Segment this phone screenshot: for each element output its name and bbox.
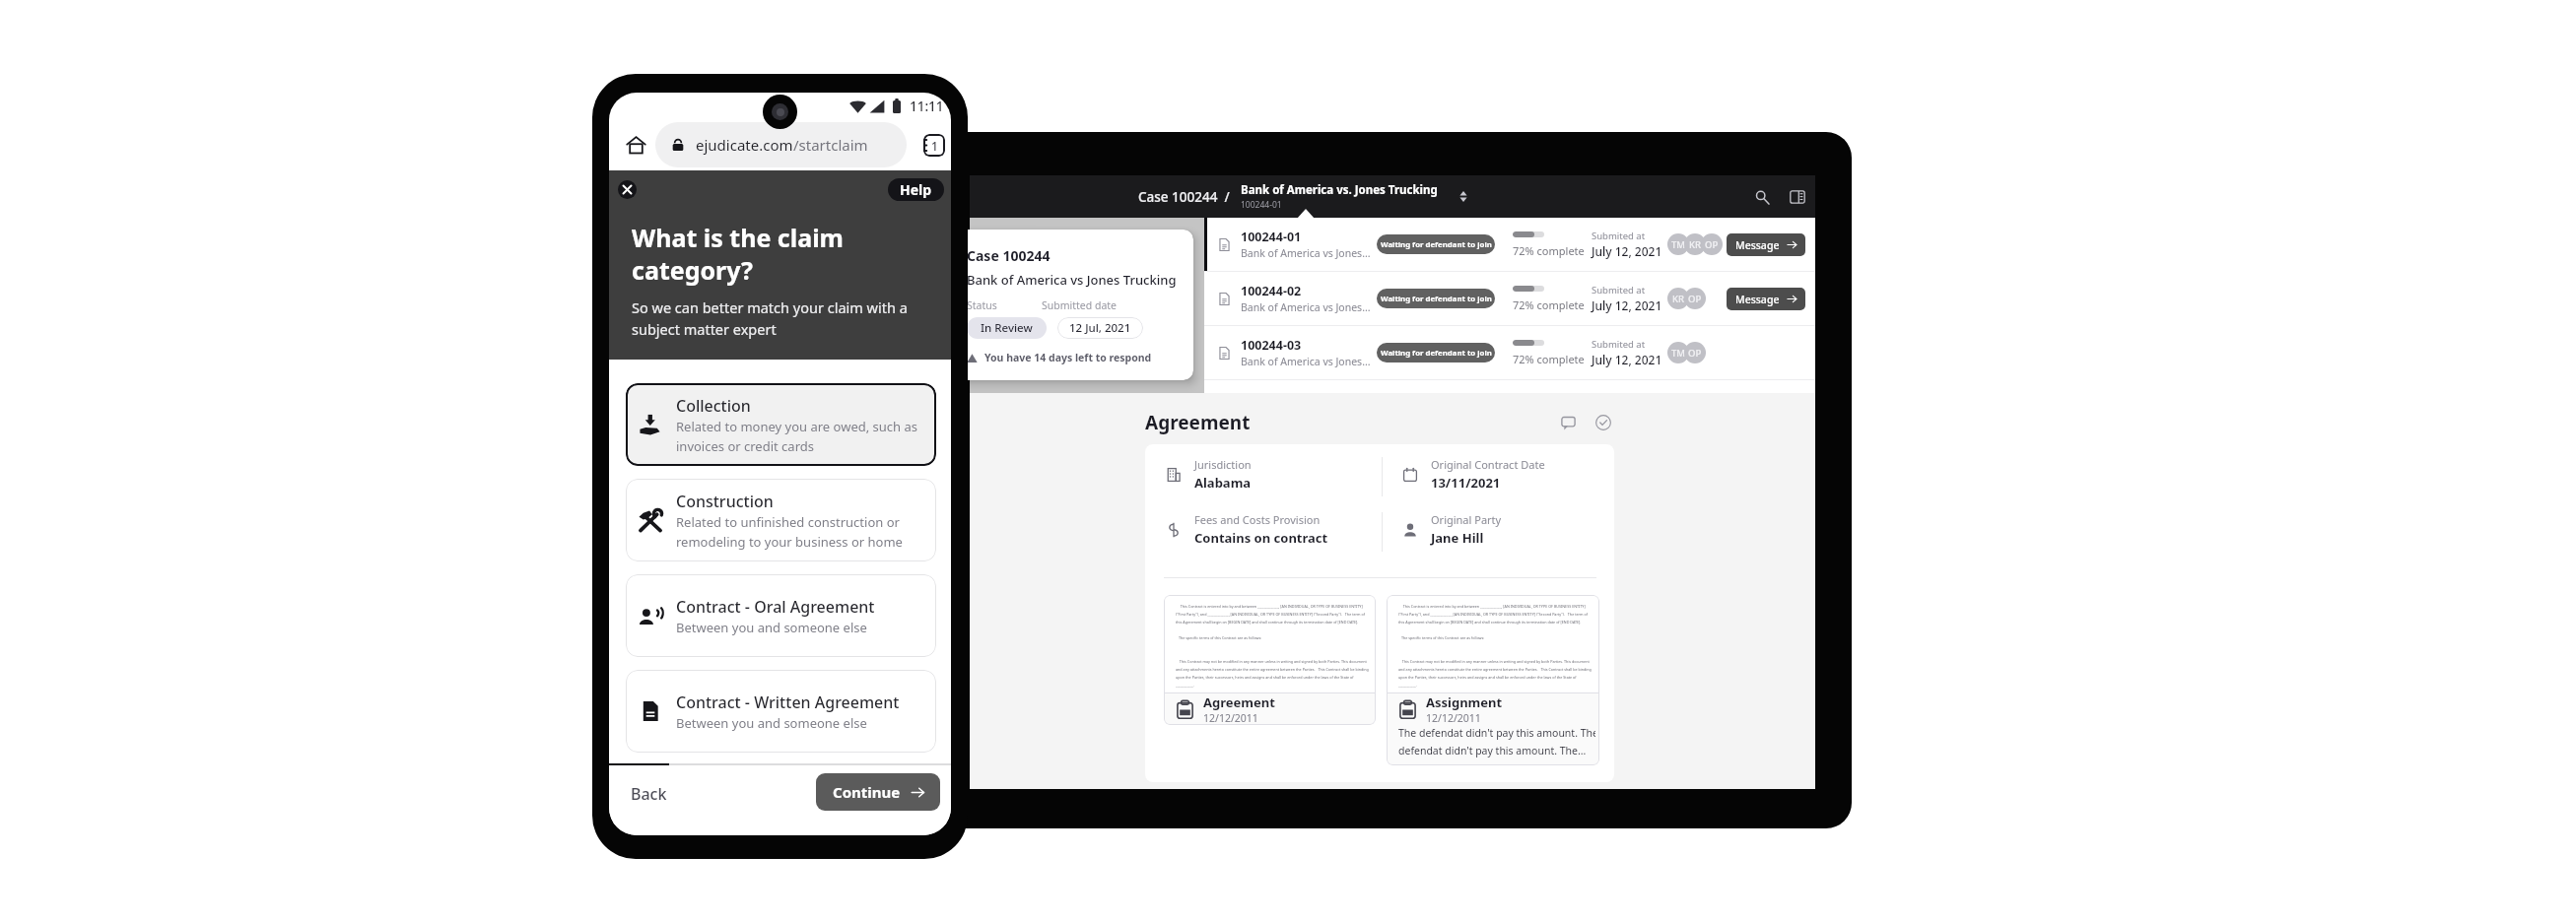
- staticText: Construction: [676, 491, 774, 512]
- staticText: July 12, 2021: [1592, 352, 1662, 367]
- staticText: In Review: [981, 320, 1033, 336]
- staticText: 12/12/2011: [1203, 711, 1258, 725]
- button[interactable]: Help: [888, 178, 944, 201]
- staticText: Jurisdiction: [1194, 457, 1252, 472]
- staticText: Original Contract Date: [1431, 457, 1545, 472]
- button[interactable]: Comments: [1557, 412, 1579, 433]
- staticText: Status: [967, 298, 997, 312]
- staticText: ejudicate.com: [696, 135, 793, 155]
- staticText: Contract - Oral Agreement: [676, 596, 875, 618]
- staticText: KR: [1689, 238, 1702, 251]
- button[interactable]: Home: [618, 127, 653, 163]
- staticText: 100244-03: [1241, 337, 1302, 354]
- staticText: Message: [1735, 293, 1780, 306]
- staticText: You have 14 days left to respond: [984, 351, 1152, 364]
- staticText: Submited at: [1592, 284, 1646, 296]
- staticText: Original Party: [1431, 512, 1502, 527]
- button[interactable]: 12 Jul, 2021: [1057, 317, 1143, 339]
- staticText: July 12, 2021: [1592, 297, 1662, 313]
- staticText: Submitted date: [1042, 298, 1117, 312]
- staticText: Assignment: [1426, 693, 1503, 711]
- staticText: Bank of America vs Jones...: [1241, 300, 1371, 314]
- staticText: Waiting for defendant to join: [1381, 239, 1492, 250]
- button[interactable]: 100244-01: [1204, 218, 1815, 271]
- staticText: Contract - Written Agreement: [676, 691, 900, 713]
- staticText: 100244-01: [1241, 199, 1282, 211]
- staticText: Bank of America vs Jones...: [1241, 355, 1371, 368]
- staticText: Agreement: [1203, 693, 1275, 711]
- staticText: TM: [1671, 347, 1686, 360]
- button[interactable]: This Contract is entered into by and bet…: [1164, 595, 1376, 725]
- staticText: The defendat didn't pay this amount. The…: [1398, 726, 1595, 757]
- staticText: Between you and someone else: [676, 714, 867, 732]
- staticText: 72% complete: [1513, 243, 1585, 258]
- staticText: Help: [900, 180, 932, 199]
- staticText: Bank of America vs Jones...: [1241, 246, 1371, 260]
- staticText: Fees and Costs Provision: [1194, 512, 1321, 527]
- staticText: Related to unfinished construction or re…: [676, 513, 903, 551]
- button[interactable]: Construction: [626, 479, 936, 561]
- staticText: Message: [1735, 238, 1780, 252]
- button[interactable]: 100244-02: [1204, 272, 1815, 325]
- staticText: Between you and someone else: [676, 619, 867, 636]
- staticText: 100244-01: [1241, 229, 1302, 245]
- button[interactable]: Message: [1727, 233, 1805, 256]
- staticText: Back: [631, 783, 667, 801]
- staticText: Related to money you are owed, such as i…: [676, 418, 918, 455]
- button[interactable]: This Contract is entered into by and bet…: [1387, 595, 1599, 765]
- staticText: 12/12/2011: [1426, 711, 1481, 725]
- staticText: 11:11: [910, 98, 944, 115]
- staticText: Submited at: [1592, 338, 1646, 351]
- button[interactable]: Collection: [626, 383, 936, 466]
- button[interactable]: Message: [1727, 288, 1805, 310]
- button[interactable]: In Review: [967, 317, 1047, 339]
- button[interactable]: Back: [631, 773, 677, 811]
- staticText: 12 Jul, 2021: [1069, 320, 1131, 336]
- staticText: Alabama: [1194, 474, 1252, 492]
- staticText: This Contract is entered into by and bet…: [1398, 604, 1593, 688]
- button[interactable]: ejudicate.com: [655, 122, 907, 167]
- button[interactable]: 100244-03: [1204, 326, 1815, 379]
- staticText: So we can better match your claim with a…: [632, 297, 908, 339]
- staticText: Case 100244: [967, 246, 1051, 265]
- staticText: 72% complete: [1513, 297, 1585, 312]
- staticText: OP: [1688, 347, 1702, 360]
- staticText: Contains on contract: [1194, 529, 1328, 547]
- staticText: 100244-02: [1241, 283, 1302, 299]
- staticText: OP: [1688, 293, 1702, 305]
- button[interactable]: Approve: [1593, 412, 1614, 433]
- staticText: This Contract is entered into by and bet…: [1176, 604, 1369, 688]
- staticText: Continue: [833, 782, 901, 802]
- staticText: KR: [1672, 293, 1685, 305]
- staticText: Collection: [676, 395, 751, 417]
- staticText: Bank of America vs. Jones Trucking: [1241, 182, 1438, 198]
- button[interactable]: Toggle panel: [1785, 184, 1810, 210]
- staticText: Bank of America vs Jones Trucking: [967, 271, 1177, 289]
- button[interactable]: Tabs: [921, 130, 945, 160]
- staticText: 1: [931, 138, 938, 154]
- staticText: Submited at: [1592, 230, 1646, 242]
- staticText: TM: [1671, 238, 1686, 251]
- staticText: Waiting for defendant to join: [1381, 294, 1492, 304]
- staticText: July 12, 2021: [1592, 243, 1662, 259]
- staticText: 13/11/2021: [1431, 474, 1501, 492]
- staticText: Case 100244 /: [1138, 188, 1230, 206]
- staticText: 72% complete: [1513, 352, 1585, 366]
- button[interactable]: Continue: [816, 773, 940, 811]
- staticText: Agreement: [1145, 410, 1251, 435]
- staticText: What is the claim category?: [632, 221, 844, 288]
- button[interactable]: Search: [1749, 184, 1775, 210]
- staticText: Jane Hill: [1431, 529, 1484, 547]
- button[interactable]: Close: [613, 175, 641, 203]
- staticText: OP: [1705, 238, 1719, 251]
- button[interactable]: Contract - Written Agreement: [626, 670, 936, 753]
- staticText: Waiting for defendant to join: [1381, 348, 1492, 359]
- staticText: /startclaim: [793, 135, 868, 155]
- button[interactable]: Contract - Oral Agreement: [626, 574, 936, 657]
